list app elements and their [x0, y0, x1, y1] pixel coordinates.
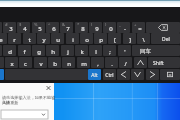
button[interactable]: o [80, 33, 93, 44]
button[interactable]: t [23, 33, 36, 44]
staticText: k [80, 48, 84, 56]
button[interactable]: ( [89, 22, 102, 33]
button[interactable]: Left [117, 69, 130, 80]
button[interactable]: ] [123, 33, 136, 44]
staticText: u [56, 36, 60, 44]
staticText: $ [19, 22, 22, 28]
staticText: h [51, 48, 55, 56]
button[interactable]: i [66, 33, 79, 44]
button[interactable]: Alt [88, 69, 101, 80]
button[interactable]: ^ [46, 22, 59, 33]
staticText: _ [119, 22, 121, 28]
staticText: ^ [48, 22, 51, 28]
staticText: \ [142, 36, 145, 44]
button[interactable]: % [32, 22, 45, 33]
staticText: , [97, 60, 99, 68]
button[interactable]: h [46, 45, 59, 56]
button[interactable]: m [77, 57, 90, 68]
button[interactable]: x [5, 57, 18, 68]
button[interactable] [0, 69, 4, 80]
staticText: c [24, 60, 27, 68]
button[interactable]: Hide keyboard [160, 69, 180, 80]
staticText: ' [124, 48, 126, 56]
staticText: [ [114, 36, 116, 44]
button[interactable]: ' [118, 45, 131, 56]
button[interactable]: ; [103, 45, 116, 56]
staticText: Alt [91, 72, 98, 79]
staticText: d [8, 48, 12, 56]
staticText: b [53, 60, 57, 68]
button[interactable]: Close [44, 84, 53, 92]
button[interactable]: n [62, 57, 75, 68]
staticText: g [37, 48, 41, 56]
button[interactable]: . [105, 57, 118, 68]
button[interactable]: , [91, 57, 104, 68]
staticText: r [13, 36, 16, 44]
staticText: 请先选择输入法，如果不能输入请重新 [2, 95, 56, 105]
button[interactable]: l [89, 45, 102, 56]
button[interactable]: Shift [148, 57, 180, 68]
staticText: ; [109, 48, 111, 56]
button[interactable]: + [132, 22, 145, 33]
staticText: 3 [9, 25, 13, 33]
staticText: 8 [81, 25, 85, 33]
staticText: + [134, 22, 137, 28]
button[interactable]: Right [146, 69, 159, 80]
staticText: o [85, 36, 89, 44]
button[interactable]: \ [137, 33, 150, 44]
button[interactable]: g [32, 45, 45, 56]
staticText: 回车 [140, 48, 151, 55]
button[interactable]: [ [108, 33, 121, 44]
button[interactable]: y [37, 33, 50, 44]
button[interactable]: Up [134, 57, 147, 68]
staticText: ( [91, 22, 93, 28]
button[interactable]: e [0, 33, 7, 44]
staticText: 选择。 [2, 100, 15, 105]
button[interactable]: / [119, 57, 132, 68]
button[interactable]: v [34, 57, 47, 68]
button[interactable]: f [18, 45, 31, 56]
button[interactable]: u [51, 33, 64, 44]
button[interactable]: # [3, 22, 16, 33]
staticText: ) [105, 22, 107, 28]
button[interactable]: Ctrl [103, 69, 116, 80]
staticText: y [42, 36, 46, 44]
button[interactable]: Down [131, 69, 144, 80]
staticText: j [67, 48, 69, 56]
staticText: Del [162, 36, 170, 43]
button[interactable]: Backspace [146, 22, 180, 33]
staticText: * [77, 22, 80, 28]
staticText: x [10, 60, 14, 68]
staticText: = [138, 25, 142, 33]
staticText: - [124, 25, 126, 33]
button[interactable]: Del [151, 33, 180, 44]
button[interactable]: 回车 [132, 45, 180, 56]
button[interactable]: ) [103, 22, 116, 33]
button[interactable]: d [3, 45, 16, 56]
button[interactable]: r [8, 33, 21, 44]
button[interactable]: p [94, 33, 107, 44]
button[interactable]: _ [117, 22, 130, 33]
staticText: Shift [153, 60, 164, 67]
button[interactable]: & [60, 22, 73, 33]
staticText: v [39, 60, 43, 68]
staticText: f [23, 48, 26, 56]
button[interactable]: c [19, 57, 32, 68]
button[interactable]: k [75, 45, 88, 56]
button[interactable]: $ [17, 22, 30, 33]
staticText: 7 [66, 25, 70, 33]
staticText: l [95, 48, 97, 56]
staticText: m [81, 60, 87, 68]
button[interactable]: b [48, 57, 61, 68]
staticText: . [111, 60, 113, 68]
staticText: p [99, 36, 103, 44]
button[interactable]: j [61, 45, 74, 56]
button[interactable] [1, 110, 48, 119]
staticText: % [34, 22, 38, 28]
staticText: n [67, 60, 71, 68]
button[interactable]: * [75, 22, 88, 33]
